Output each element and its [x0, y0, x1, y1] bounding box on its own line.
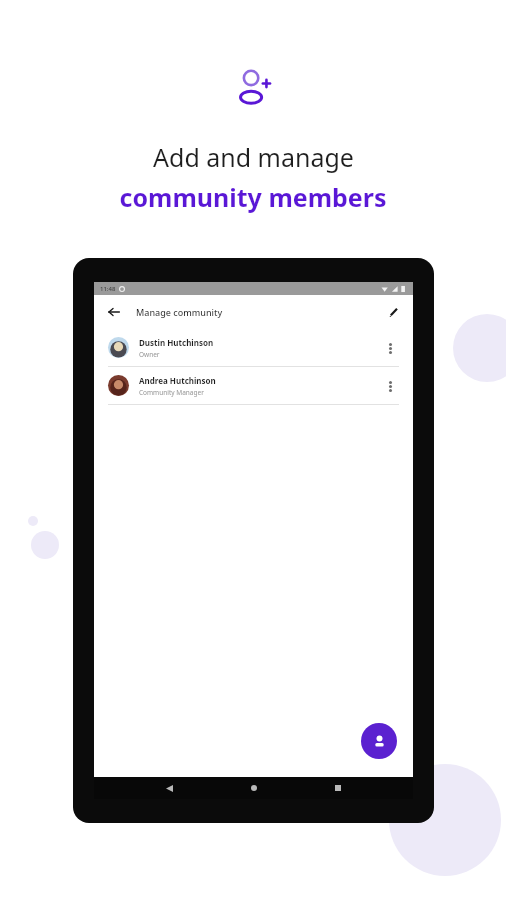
staticText: Community Manager [139, 388, 204, 397]
staticText: Andrea Hutchinson [139, 375, 216, 386]
staticText: Dustin Hutchinson [139, 337, 214, 348]
button[interactable]: More options [381, 339, 399, 357]
button[interactable]: Andrea Hutchinson [94, 367, 413, 404]
staticText: Owner [139, 350, 160, 359]
button[interactable]: Dustin Hutchinson [94, 329, 413, 366]
button[interactable]: Back [159, 778, 179, 798]
staticText: 11:48 [100, 285, 116, 293]
button[interactable]: Recents [328, 778, 348, 798]
staticText: Add and manage [153, 140, 354, 174]
staticText: community members [119, 180, 387, 214]
button[interactable]: Edit [383, 302, 403, 322]
staticText: Manage community [136, 306, 223, 318]
button[interactable]: More options [381, 377, 399, 395]
button[interactable]: Add member [361, 723, 397, 759]
button[interactable]: Back [104, 302, 124, 322]
button[interactable]: Home [244, 778, 264, 798]
